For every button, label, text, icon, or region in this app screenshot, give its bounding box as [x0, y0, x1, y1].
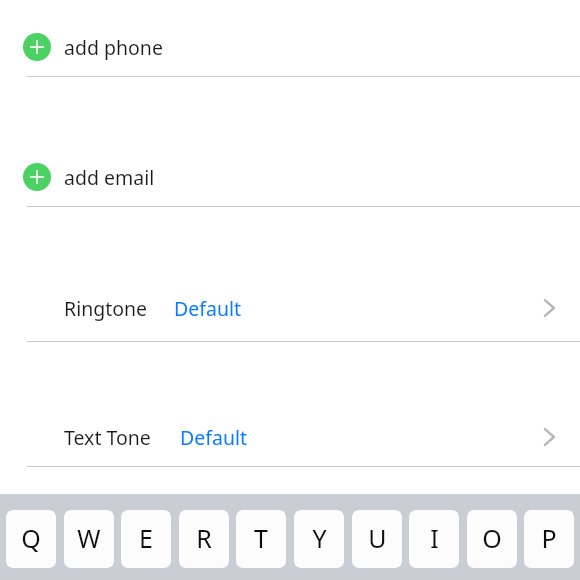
button[interactable] [0, 412, 580, 460]
staticText: R [196, 521, 212, 555]
staticText: Y [312, 521, 327, 555]
staticText: O [482, 521, 502, 555]
button[interactable] [0, 153, 580, 201]
button[interactable]: O [467, 510, 517, 568]
staticText: U [368, 521, 387, 555]
other: Choose Text Tone [539, 425, 557, 449]
staticText: add phone [64, 34, 163, 61]
staticText: I [430, 521, 439, 555]
button[interactable]: Y [294, 510, 344, 568]
button[interactable]: E [121, 510, 171, 568]
staticText: Q [21, 521, 41, 555]
staticText: Ringtone [64, 295, 148, 322]
button[interactable]: R [179, 510, 229, 568]
staticText: W [77, 521, 101, 555]
button[interactable] [0, 283, 580, 331]
button[interactable]: W [64, 510, 114, 568]
staticText: Text Tone [64, 424, 151, 451]
staticText: add email [64, 164, 155, 191]
button[interactable]: U [352, 510, 402, 568]
button[interactable]: P [524, 510, 574, 568]
staticText: E [139, 521, 153, 555]
button[interactable]: Q [6, 510, 56, 568]
other: Choose Ringtone [539, 296, 557, 320]
button[interactable] [0, 23, 580, 71]
staticText: Default [174, 295, 242, 322]
staticText: P [541, 521, 557, 555]
staticText: Default [180, 424, 248, 451]
button[interactable]: T [236, 510, 286, 568]
button[interactable]: I [409, 510, 459, 568]
staticText: T [254, 521, 268, 555]
